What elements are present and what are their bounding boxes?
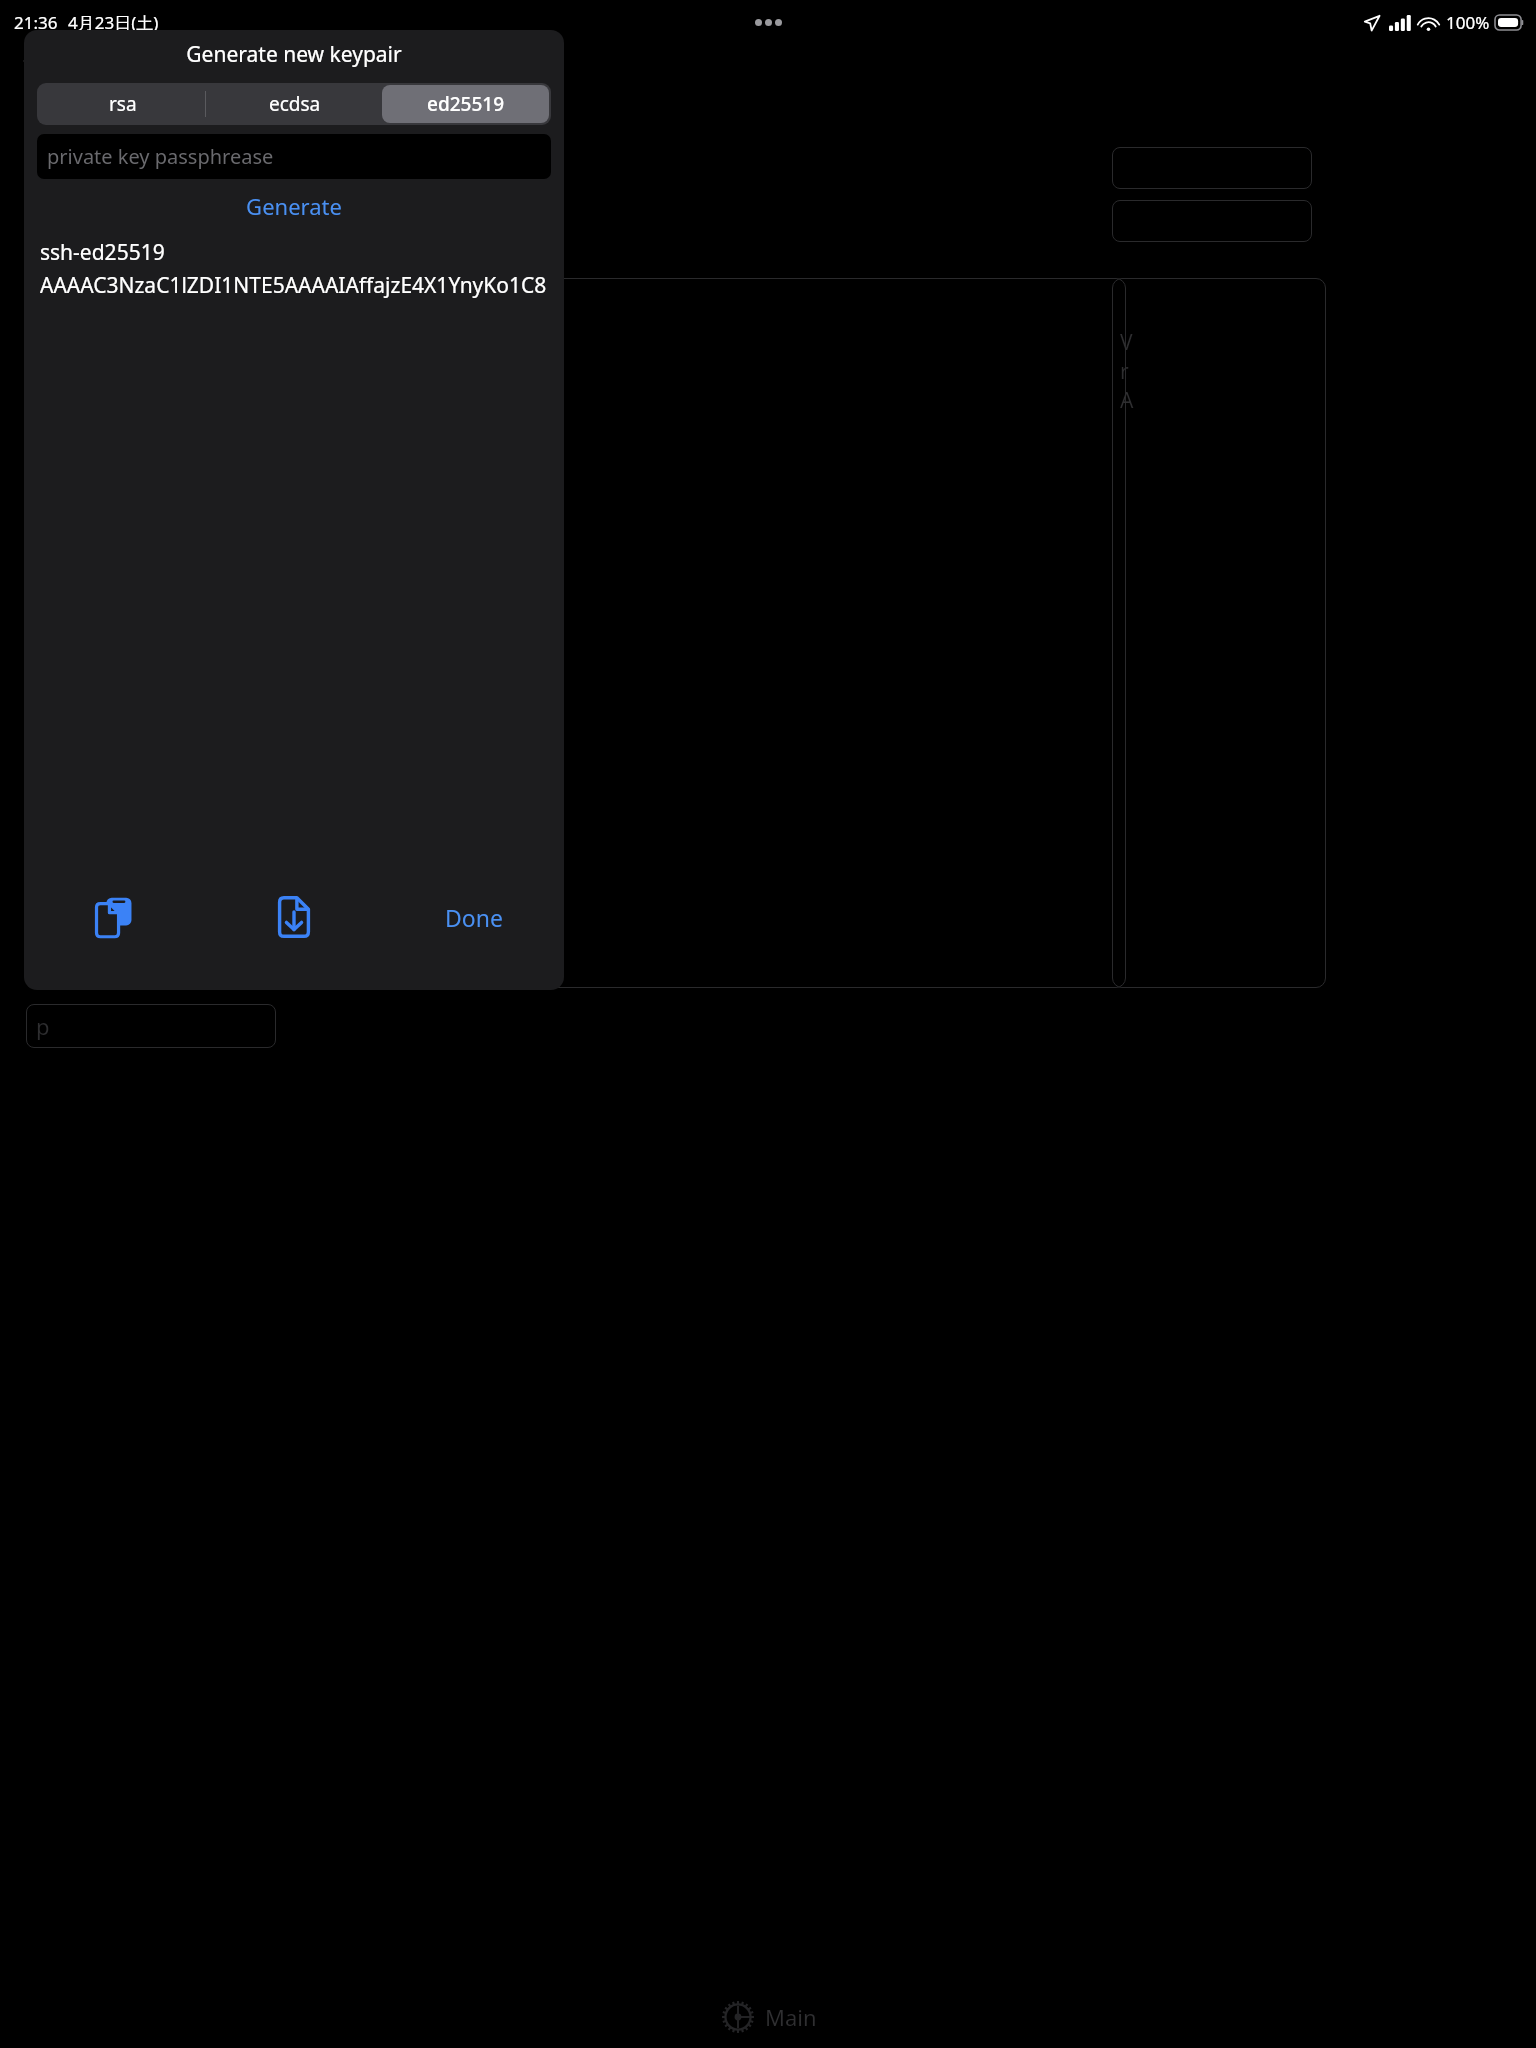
staticText: ssh-ed25519: [40, 238, 165, 267]
staticText: --: [34, 286, 48, 315]
staticText: Generate: [246, 191, 342, 221]
staticText: 4月23日(土): [68, 11, 159, 34]
staticText: ed25519: [427, 91, 505, 117]
staticText: private key passphrease: [47, 143, 274, 170]
staticText: T: [36, 153, 49, 183]
staticText: AAAAC3NzaC1lZDI1NTE5AAAAIAffajzE4X1YnyKo…: [40, 271, 548, 300]
button[interactable]: Save public key to file: [204, 888, 384, 946]
staticText: r: [1120, 357, 1129, 386]
button[interactable]: ed25519: [382, 85, 549, 123]
button[interactable]: rsa: [37, 83, 209, 125]
button[interactable]: private key passphrease: [37, 134, 551, 179]
staticText: p: [36, 1011, 50, 1041]
staticText: V: [1120, 328, 1133, 357]
button[interactable]: Copy public key: [24, 888, 204, 946]
staticText: Main: [765, 2002, 817, 2032]
staticText: ecdsa: [269, 91, 321, 117]
staticText: Generate new keypair: [24, 40, 564, 69]
staticText: rsa: [109, 91, 137, 117]
staticText: A: [1120, 386, 1134, 415]
button[interactable]: Done: [384, 894, 564, 941]
button[interactable]: Generate: [24, 185, 564, 227]
button[interactable]: ecdsa: [209, 83, 380, 125]
staticText: Done: [445, 902, 503, 933]
staticText: 21:36: [14, 11, 58, 34]
staticText: 100%: [1446, 11, 1490, 34]
